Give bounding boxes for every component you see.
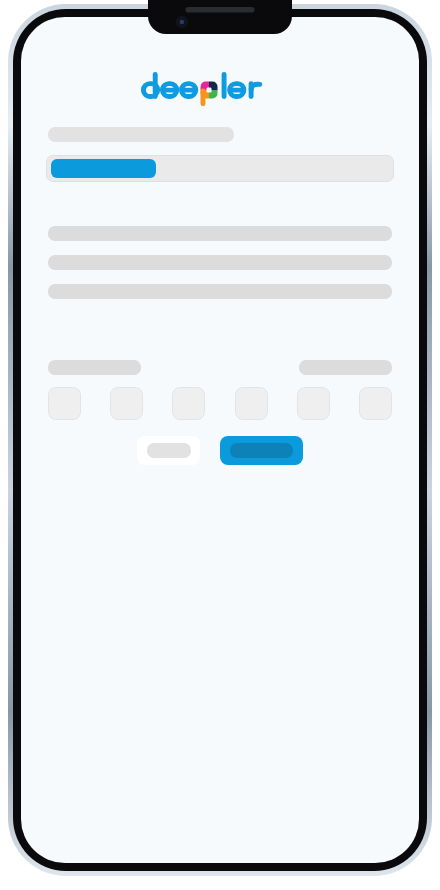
button[interactable]: Option 4 [235,387,268,420]
button[interactable]: Option 1 [48,387,81,420]
button[interactable]: Option 2 [110,387,143,420]
button[interactable]: Option 6 [359,387,392,420]
button[interactable] [46,155,394,182]
button[interactable]: deepler logo [21,70,419,104]
button[interactable]: Option 3 [172,387,205,420]
button[interactable]: Continue [220,436,303,465]
button[interactable]: Option 5 [297,387,330,420]
button[interactable]: Cancel [137,436,200,465]
